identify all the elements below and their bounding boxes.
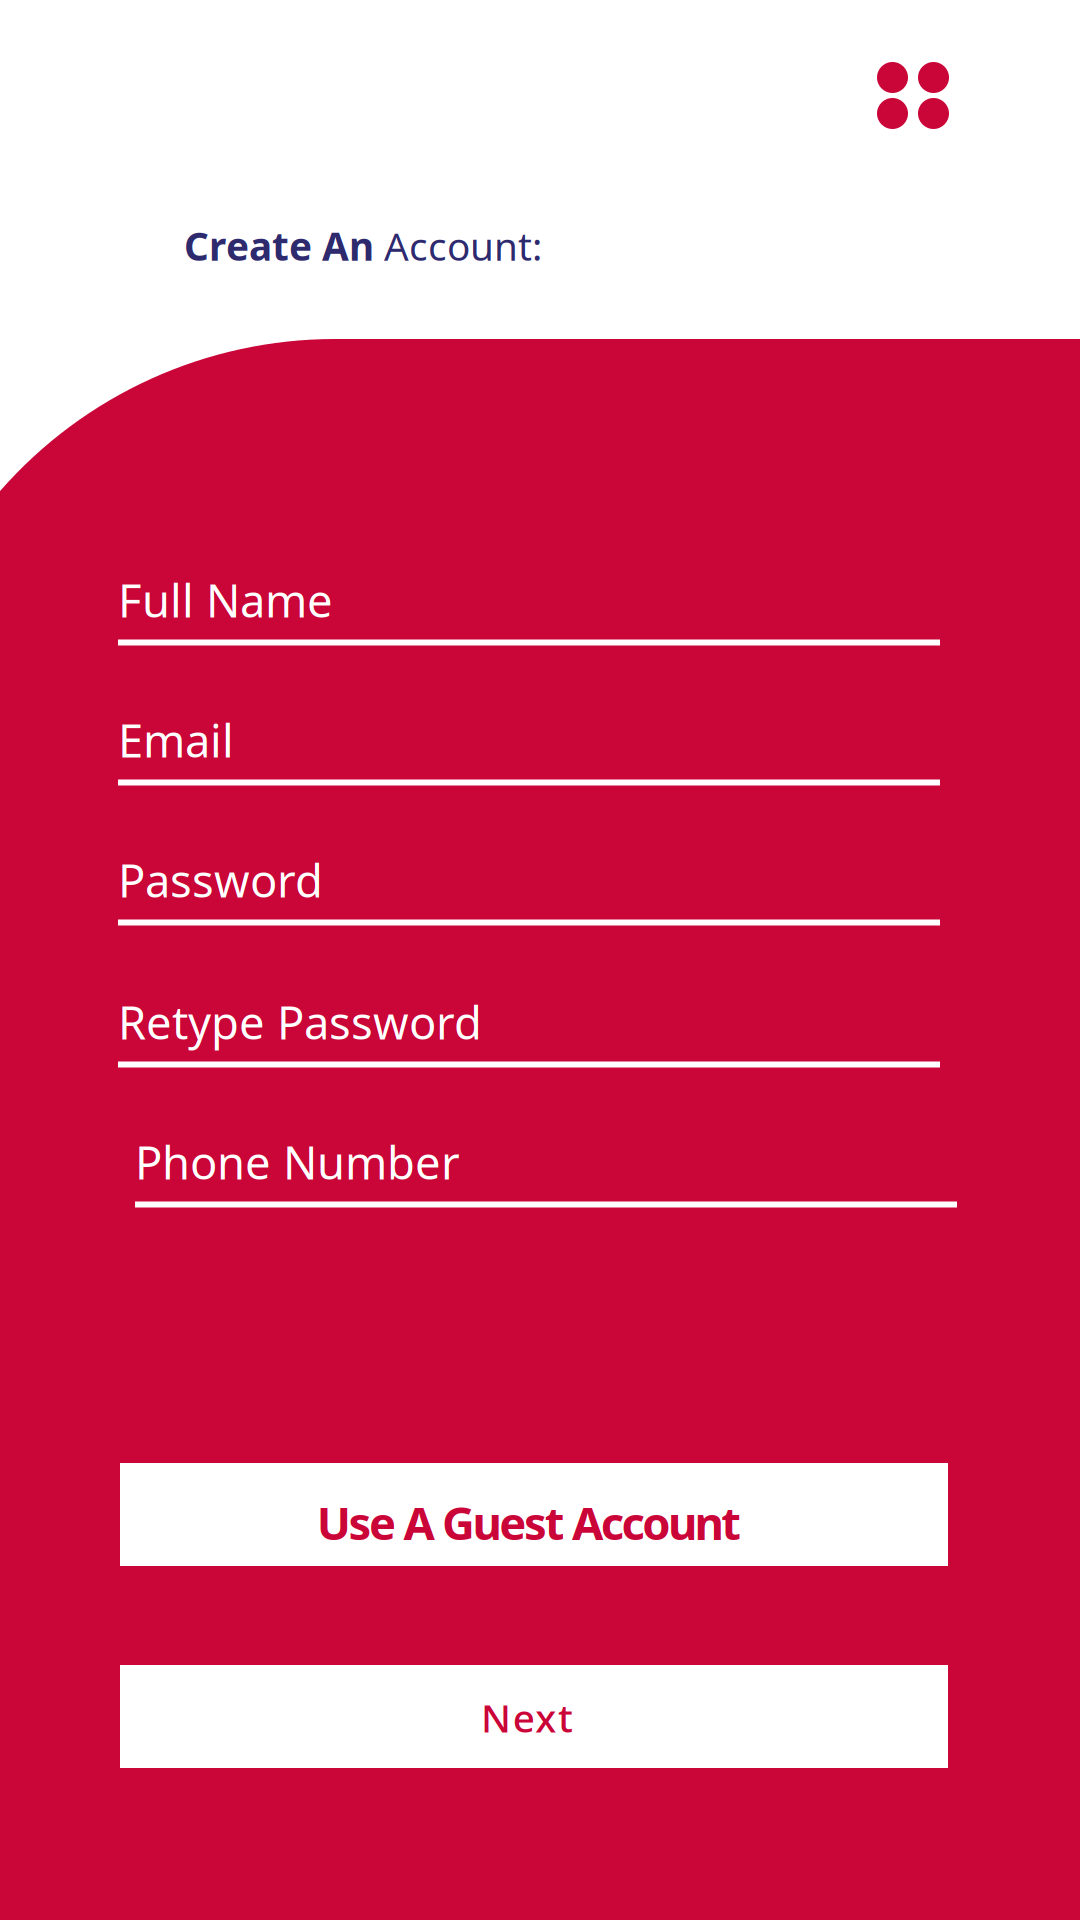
button[interactable]: Phone Number [135,1139,957,1207]
staticText: Phone Number [135,1132,460,1192]
staticText: Use A Guest Account [317,1492,741,1553]
staticText: Email [118,710,234,770]
button[interactable]: Next [120,1665,948,1768]
staticText: Account: [384,220,542,271]
button[interactable]: Password [118,857,940,925]
staticText: Password [118,850,323,910]
button[interactable]: Menu [877,62,949,129]
staticText: Create An [184,220,384,271]
staticText: Retype Password [118,992,482,1052]
button[interactable]: Use A Guest Account [120,1463,948,1566]
staticText: Full Name [118,570,333,630]
button[interactable]: Retype Password [118,999,940,1067]
staticText: Next [481,1692,573,1743]
button[interactable]: Full Name [118,577,940,645]
button[interactable]: Email [118,717,940,785]
